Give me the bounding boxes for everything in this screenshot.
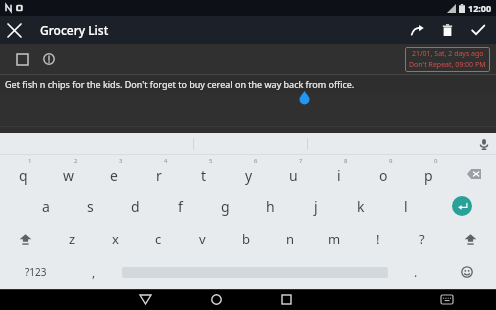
staticText: l bbox=[404, 197, 408, 216]
button[interactable]: l bbox=[383, 189, 428, 223]
staticText: f bbox=[178, 197, 183, 216]
staticText: m bbox=[328, 230, 341, 248]
staticText: t bbox=[201, 166, 207, 185]
staticText: 0 bbox=[434, 157, 438, 165]
staticText: i bbox=[337, 166, 341, 185]
staticText: ? bbox=[419, 230, 425, 248]
staticText: ! bbox=[376, 230, 380, 248]
staticText: a bbox=[42, 197, 50, 216]
staticText: 3 bbox=[119, 157, 123, 165]
button[interactable]: f bbox=[158, 189, 203, 223]
button[interactable]: v bbox=[180, 223, 224, 255]
staticText: k bbox=[357, 197, 365, 216]
button[interactable]: Recents bbox=[251, 289, 321, 310]
staticText: . bbox=[414, 264, 418, 280]
staticText: Don't Repeat, 09:00 PM bbox=[409, 60, 486, 70]
staticText: ?123 bbox=[25, 265, 47, 279]
button[interactable]: Save bbox=[462, 16, 494, 44]
button[interactable]: Back bbox=[110, 289, 181, 310]
button[interactable]: ! bbox=[356, 223, 400, 255]
button[interactable]: ? bbox=[400, 223, 444, 255]
staticText: n bbox=[286, 230, 295, 248]
staticText: x bbox=[112, 230, 119, 248]
button[interactable]: Shift bbox=[444, 223, 496, 255]
staticText: 4 bbox=[164, 157, 168, 165]
staticText: 21/01, Sat, 2 days ago bbox=[412, 49, 484, 59]
button[interactable]: Close bbox=[0, 16, 28, 44]
button[interactable]: n bbox=[268, 223, 312, 255]
staticText: j bbox=[314, 197, 318, 216]
button[interactable]: h bbox=[248, 189, 293, 223]
staticText: 6 bbox=[254, 157, 258, 165]
staticText: v bbox=[199, 230, 206, 248]
button[interactable]: b bbox=[224, 223, 268, 255]
button[interactable]: Backspace bbox=[451, 155, 496, 189]
staticText: 12:00 bbox=[468, 2, 492, 14]
button[interactable]: 5 bbox=[181, 155, 226, 189]
button[interactable]: Checkbox bbox=[10, 47, 34, 71]
staticText: 7 bbox=[299, 157, 303, 165]
staticText: 5 bbox=[209, 157, 213, 165]
staticText: 8 bbox=[344, 157, 348, 165]
button[interactable]: Voice input bbox=[472, 133, 496, 155]
button[interactable]: 6 bbox=[226, 155, 271, 189]
staticText: y bbox=[245, 166, 253, 185]
button[interactable]: . bbox=[393, 255, 438, 289]
staticText: Grocery List bbox=[40, 22, 109, 38]
button[interactable]: a bbox=[23, 189, 68, 223]
staticText: z bbox=[69, 230, 76, 248]
button[interactable]: Space bbox=[116, 255, 393, 289]
staticText: r bbox=[156, 166, 162, 185]
button[interactable]: Delete bbox=[432, 16, 462, 44]
button[interactable]: Switch keyboard bbox=[412, 289, 482, 310]
staticText: c bbox=[155, 230, 162, 248]
staticText: Get fish n chips for the kids. Don't for… bbox=[5, 78, 355, 90]
button[interactable]: g bbox=[203, 189, 248, 223]
button[interactable]: 4 bbox=[136, 155, 181, 189]
button[interactable]: s bbox=[68, 189, 113, 223]
staticText: u bbox=[289, 166, 298, 185]
button[interactable]: 8 bbox=[316, 155, 361, 189]
button[interactable]: 2 bbox=[46, 155, 91, 189]
button[interactable]: Share bbox=[402, 16, 432, 44]
staticText: 1 bbox=[28, 157, 32, 165]
button[interactable]: 3 bbox=[91, 155, 136, 189]
button[interactable]: 9 bbox=[361, 155, 406, 189]
button[interactable]: ?123 bbox=[0, 255, 71, 289]
button[interactable]: 21/01, Sat, 2 days ago bbox=[405, 47, 490, 72]
staticText: q bbox=[19, 166, 28, 185]
button[interactable]: Enter bbox=[428, 189, 496, 223]
staticText: s bbox=[87, 197, 94, 216]
button[interactable]: 1 bbox=[0, 155, 46, 189]
staticText: e bbox=[110, 166, 118, 185]
button[interactable]: Emoji bbox=[438, 255, 496, 289]
button[interactable]: j bbox=[293, 189, 338, 223]
button[interactable]: 0 bbox=[406, 155, 451, 189]
button[interactable]: Shift bbox=[0, 223, 51, 255]
button[interactable]: Priority bbox=[37, 47, 61, 71]
button[interactable]: d bbox=[113, 189, 158, 223]
button[interactable]: , bbox=[71, 255, 116, 289]
button[interactable]: Home bbox=[181, 289, 251, 310]
staticText: , bbox=[92, 264, 96, 280]
button[interactable]: m bbox=[312, 223, 356, 255]
staticText: 9 bbox=[389, 157, 393, 165]
button[interactable]: k bbox=[338, 189, 383, 223]
staticText: w bbox=[63, 166, 75, 185]
staticText: d bbox=[131, 197, 140, 216]
button[interactable]: 7 bbox=[271, 155, 316, 189]
button[interactable]: z bbox=[51, 223, 94, 255]
button[interactable]: x bbox=[94, 223, 137, 255]
staticText: p bbox=[424, 166, 433, 185]
button[interactable]: c bbox=[137, 223, 180, 255]
staticText: b bbox=[242, 230, 250, 248]
staticText: g bbox=[221, 197, 230, 216]
staticText: 2 bbox=[74, 157, 78, 165]
staticText: o bbox=[379, 166, 388, 185]
staticText: h bbox=[266, 197, 275, 216]
